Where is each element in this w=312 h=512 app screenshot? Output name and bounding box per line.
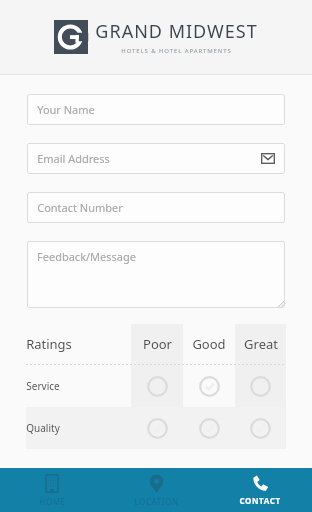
- staticText: LOCATION: [134, 496, 179, 507]
- button[interactable]: Quality rated Great: [235, 407, 286, 449]
- button[interactable]: Quality rated Good: [183, 407, 235, 449]
- button[interactable]: Quality rated Poor: [131, 407, 183, 449]
- staticText: Your Name: [37, 102, 95, 117]
- staticText: HOME: [39, 496, 66, 507]
- staticText: Contact Number: [37, 200, 123, 215]
- button[interactable]: Service rated Great: [235, 365, 286, 407]
- button[interactable]: Service rated Poor: [131, 365, 183, 407]
- staticText: GRAND MIDWEST: [95, 19, 258, 44]
- staticText: Great: [244, 335, 278, 353]
- button[interactable]: LOCATION: [104, 468, 208, 512]
- staticText: Email Address: [37, 151, 110, 166]
- staticText: Feedback/Message: [37, 249, 136, 264]
- staticText: CONTACT: [239, 495, 281, 506]
- button[interactable]: CONTACT: [208, 468, 312, 512]
- staticText: Poor: [143, 335, 172, 353]
- staticText: HOTELS & HOTEL APARTMENTS: [121, 47, 232, 55]
- staticText: Quality: [26, 421, 60, 435]
- staticText: Service: [26, 379, 60, 393]
- button[interactable]: Email Address: [27, 143, 285, 174]
- staticText: Ratings: [26, 335, 72, 353]
- button[interactable]: HOME: [0, 468, 104, 512]
- button[interactable]: Feedback/Message: [27, 241, 285, 308]
- button[interactable]: Contact Number: [27, 192, 285, 223]
- button[interactable]: Service rated Good: [183, 365, 235, 407]
- staticText: Good: [192, 335, 226, 353]
- button[interactable]: Your Name: [27, 94, 285, 125]
